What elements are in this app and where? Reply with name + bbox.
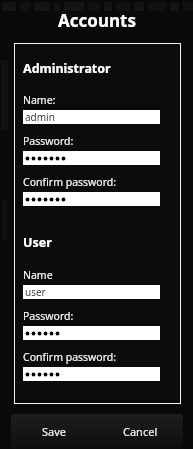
staticText: Confirm password: [23,175,117,189]
button[interactable] [23,151,160,165]
button[interactable]: Save [11,414,97,449]
staticText: User [23,234,52,251]
button[interactable]: admin [23,110,160,124]
staticText: Accounts [58,9,136,32]
staticText: Confirm password: [23,350,117,364]
staticText: Save [42,424,67,439]
button[interactable] [23,326,160,340]
staticText: Name [23,268,53,282]
staticText: Administrator [23,60,111,77]
staticText: Password: [23,134,74,148]
staticText: user [25,285,46,299]
staticText: Cancel [123,424,158,439]
button[interactable]: user [23,285,160,299]
button[interactable]: Cancel [97,414,183,449]
button[interactable] [23,367,160,381]
button[interactable] [23,192,160,206]
staticText: Password: [23,309,74,323]
staticText: Name: [23,93,56,107]
staticText: admin [25,110,55,124]
